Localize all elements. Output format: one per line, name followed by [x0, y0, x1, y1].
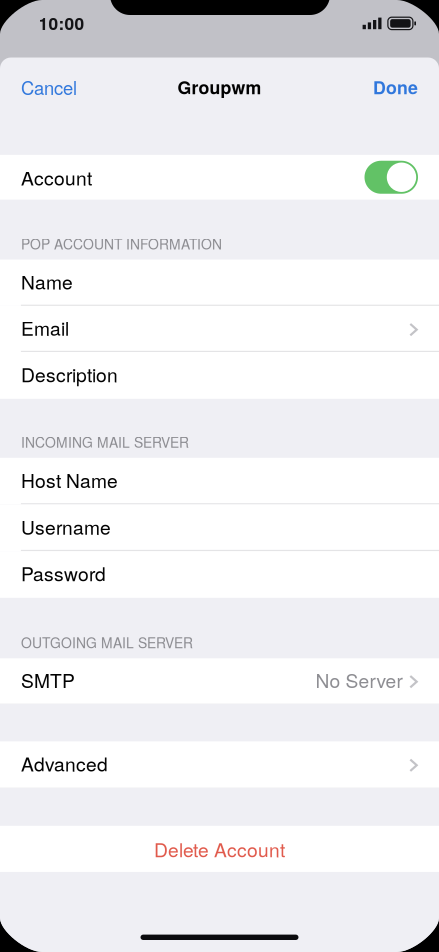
staticText: Host Name — [21, 466, 118, 493]
button[interactable]: Password — [0, 551, 439, 598]
staticText: Advanced — [21, 749, 108, 777]
staticText: Groupwm — [177, 74, 261, 100]
staticText: 10:00 — [38, 11, 84, 35]
staticText: Password — [21, 559, 106, 587]
button[interactable]: Email — [0, 306, 439, 352]
staticText: Delete Account — [154, 835, 285, 863]
button[interactable]: SMTP — [0, 658, 439, 704]
staticText: No Server — [315, 666, 402, 693]
staticText: Done — [373, 74, 418, 100]
staticText: Account — [21, 163, 92, 191]
staticText: Username — [21, 513, 111, 540]
staticText: INCOMING MAIL SERVER — [21, 432, 189, 452]
button[interactable]: Delete Account — [0, 826, 439, 872]
button[interactable]: Account — [0, 155, 439, 200]
staticText: Description — [21, 360, 118, 388]
button[interactable]: Host Name — [0, 458, 439, 504]
staticText: Cancel — [21, 74, 77, 100]
staticText: Name — [21, 268, 73, 295]
button[interactable]: Name — [0, 259, 439, 306]
button[interactable]: Done — [359, 64, 439, 110]
staticText: SMTP — [21, 666, 75, 693]
button[interactable]: Username — [0, 504, 439, 551]
staticText: OUTGOING MAIL SERVER — [21, 632, 193, 652]
button[interactable]: Cancel — [0, 64, 91, 110]
button[interactable]: Description — [0, 352, 439, 399]
staticText: POP ACCOUNT INFORMATION — [21, 234, 222, 253]
button[interactable]: Advanced — [0, 741, 439, 788]
staticText: Email — [21, 314, 69, 341]
